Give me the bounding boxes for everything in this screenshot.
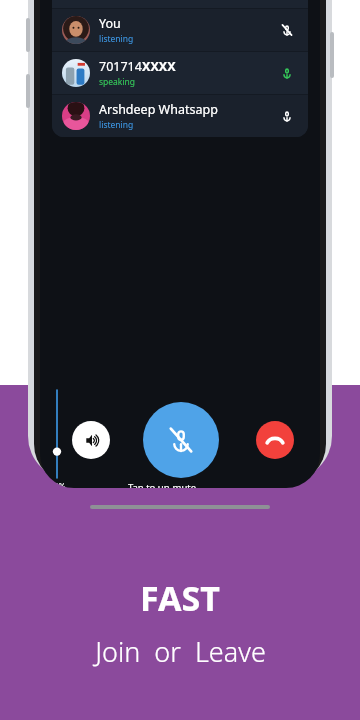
staticText: listening — [99, 119, 134, 131]
staticText: 701714 — [99, 58, 142, 75]
button[interactable]: Unmuted — [276, 105, 298, 127]
staticText: Join or Leave — [95, 633, 266, 670]
button[interactable]: Speaker — [72, 421, 110, 459]
button[interactable]: Tap to un-mute — [143, 402, 219, 478]
staticText: Arshdeep Whatsapp — [99, 101, 218, 118]
button[interactable]: End call — [256, 421, 294, 459]
staticText: FAST — [140, 575, 220, 621]
staticText: Tap to un-mute — [128, 481, 197, 488]
button[interactable]: Muted — [276, 19, 298, 41]
staticText: 100% — [44, 481, 66, 488]
button[interactable]: 701714 — [52, 52, 308, 94]
button[interactable]: Unmuted — [276, 62, 298, 84]
staticText: XXXX — [142, 58, 176, 75]
staticText: listening — [99, 33, 134, 45]
staticText: You — [99, 15, 121, 32]
staticText: speaking — [99, 76, 136, 88]
button[interactable]: Arshdeep Whatsapp — [52, 95, 308, 137]
button[interactable]: You — [52, 9, 308, 51]
